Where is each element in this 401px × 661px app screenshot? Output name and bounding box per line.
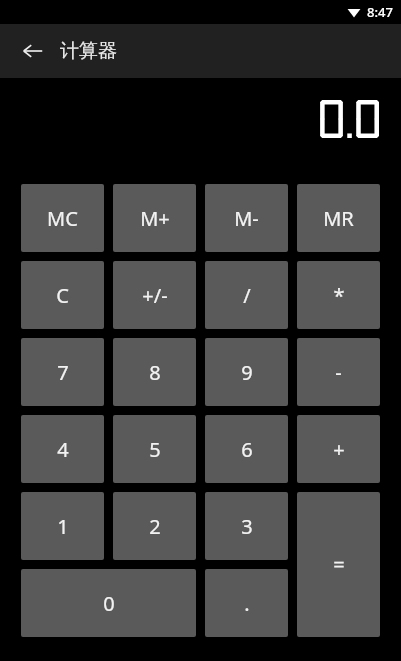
button[interactable]: +	[297, 415, 380, 483]
staticText: 5	[149, 436, 161, 463]
button[interactable]: 6	[205, 415, 288, 483]
button[interactable]: -	[297, 338, 380, 406]
button[interactable]: M+	[113, 184, 196, 252]
button[interactable]: 1	[21, 492, 104, 560]
button[interactable]: 2	[113, 492, 196, 560]
staticText: =	[333, 551, 345, 578]
staticText: 4	[57, 436, 69, 463]
button[interactable]: 8	[113, 338, 196, 406]
button[interactable]: +/-	[113, 261, 196, 329]
button[interactable]: 0	[21, 569, 196, 637]
staticText: MR	[323, 205, 354, 232]
staticText: 1	[57, 513, 69, 540]
button[interactable]: 7	[21, 338, 104, 406]
button[interactable]: M-	[205, 184, 288, 252]
staticText: .	[244, 590, 250, 617]
button[interactable]: MC	[21, 184, 104, 252]
button[interactable]: =	[297, 492, 380, 637]
staticText: 9	[241, 359, 253, 386]
staticText: /	[243, 282, 251, 309]
staticText: M-	[234, 205, 259, 232]
staticText: C	[56, 282, 69, 309]
button[interactable]: 5	[113, 415, 196, 483]
staticText: 8:47	[367, 3, 393, 21]
staticText: 2	[149, 513, 161, 540]
staticText: *	[333, 282, 345, 309]
staticText: 8	[149, 359, 161, 386]
staticText: 7	[57, 359, 69, 386]
staticText: MC	[47, 205, 78, 232]
button[interactable]: Back	[13, 31, 53, 71]
button[interactable]: MR	[297, 184, 380, 252]
staticText: -	[335, 359, 342, 386]
button[interactable]: /	[205, 261, 288, 329]
button[interactable]: .	[205, 569, 288, 637]
staticText: 3	[241, 513, 253, 540]
button[interactable]: 9	[205, 338, 288, 406]
staticText: +	[333, 436, 345, 463]
button[interactable]: C	[21, 261, 104, 329]
staticText: 6	[241, 436, 253, 463]
button[interactable]: 3	[205, 492, 288, 560]
staticText: +/-	[142, 282, 168, 309]
button[interactable]: 4	[21, 415, 104, 483]
staticText: 计算器	[60, 39, 117, 63]
button[interactable]: *	[297, 261, 380, 329]
staticText: 0	[103, 590, 115, 617]
staticText: M+	[140, 205, 170, 232]
